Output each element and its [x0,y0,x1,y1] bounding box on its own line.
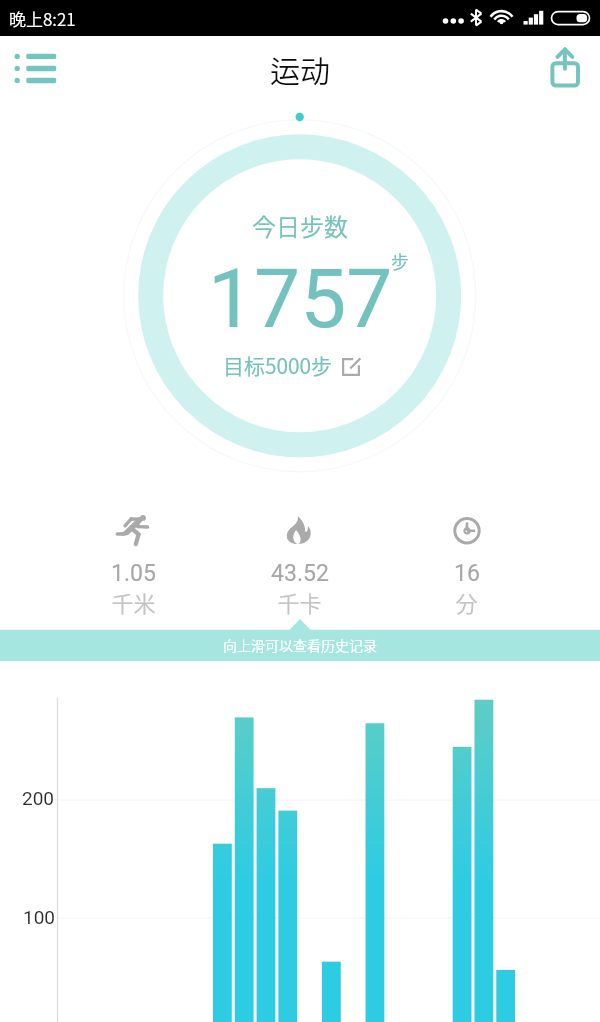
staticText: 步 [391,248,409,274]
staticText: 千卡 [277,586,322,618]
button[interactable]: 列表 [0,36,72,108]
button[interactable]: 1.05 [50,515,216,615]
staticText: 向上滑可以查看历史记录 [223,635,377,655]
staticText: 目标5000步 [223,350,333,380]
button[interactable]: 目标5000步 [219,348,368,382]
button[interactable]: 分享 [528,36,600,108]
staticText: 今日步数 [252,208,348,243]
staticText: 16 [454,560,480,587]
staticText: 100 [23,906,56,928]
button[interactable]: 16 [383,515,550,615]
staticText: 1.05 [111,560,156,587]
staticText: 200 [22,787,55,809]
staticText: 晚上8:21 [9,6,76,31]
button[interactable]: 向上滑可以查看历史记录 [0,619,600,662]
staticText: 43.52 [271,560,329,587]
staticText: 分 [455,586,478,618]
staticText: 运动 [270,47,330,90]
staticText: 千米 [111,586,156,618]
staticText: 1757 [208,251,393,347]
button[interactable]: 43.52 [216,515,383,615]
